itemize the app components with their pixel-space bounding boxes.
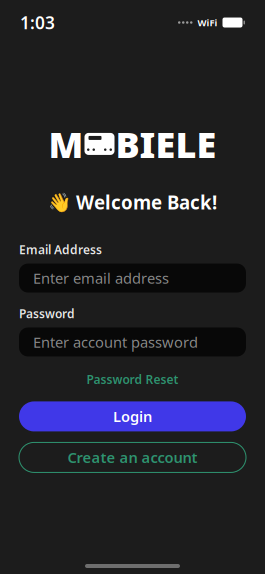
staticText: Enter account password	[33, 332, 198, 352]
staticText: Password	[19, 305, 75, 321]
staticText: Email Address	[19, 242, 102, 257]
staticText: Password Reset	[86, 371, 178, 387]
staticText: BIELE	[115, 120, 216, 168]
staticText: 1:03	[20, 11, 55, 34]
button[interactable]: Login	[19, 401, 246, 431]
button[interactable]: Enter email address	[19, 263, 246, 292]
staticText: Enter email address	[33, 268, 169, 288]
staticText: Login	[113, 407, 152, 426]
button[interactable]: Password Reset	[78, 367, 186, 391]
button[interactable]: Create an account	[19, 442, 246, 472]
staticText: M	[48, 120, 83, 168]
staticText: 👋 Welcome Back!	[48, 190, 217, 215]
button[interactable]: Enter account password	[19, 327, 246, 356]
staticText: WiFi	[197, 16, 217, 29]
staticText: Create an account	[67, 448, 197, 467]
